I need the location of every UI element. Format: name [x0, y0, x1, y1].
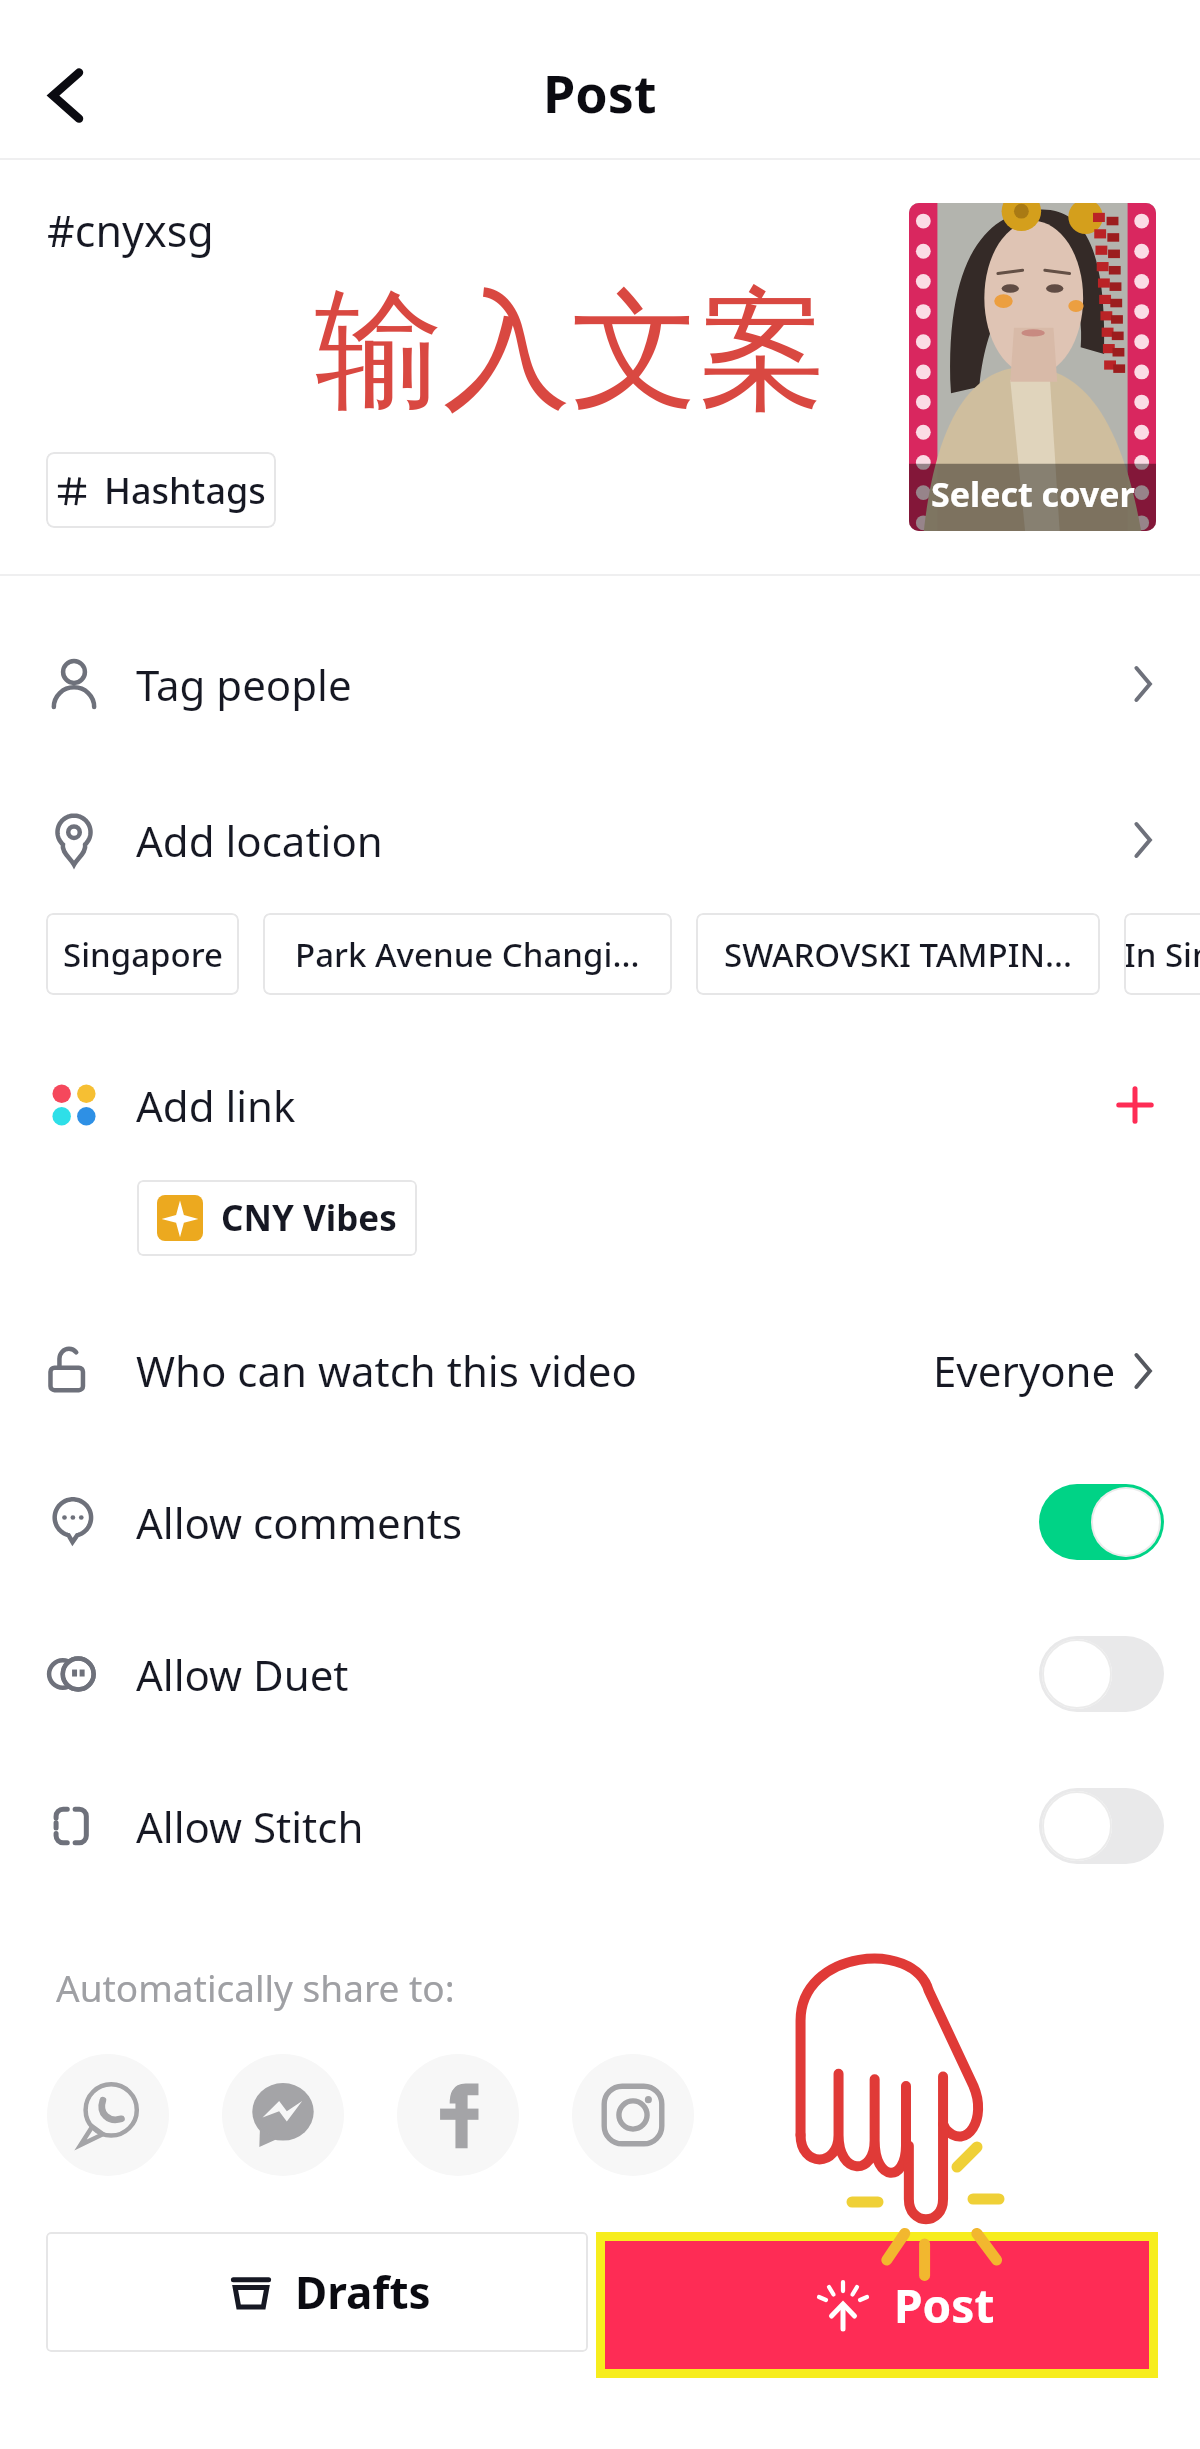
button[interactable]: Allow Stitch	[0, 1771, 1200, 1881]
staticText: Allow comments	[136, 1494, 463, 1551]
button[interactable]: Allow comments	[0, 1467, 1200, 1577]
button[interactable]: SWAROVSKI TAMPIN...	[696, 913, 1100, 995]
staticText: #cnyxsg	[47, 201, 214, 260]
staticText: Tag people	[136, 656, 352, 713]
button[interactable]: Back	[27, 55, 105, 133]
staticText: Park Avenue Changi...	[295, 932, 640, 977]
staticText: Select cover	[931, 471, 1135, 517]
button[interactable]: Post	[605, 2241, 1149, 2369]
staticText: Hashtags	[104, 466, 266, 515]
button[interactable]: Instagram	[572, 2054, 694, 2176]
button[interactable]: WhatsApp	[47, 2054, 169, 2176]
button[interactable]: Who can watch this video	[0, 1315, 1200, 1425]
button[interactable]: Park Avenue Changi...	[263, 913, 672, 995]
button[interactable]: Tag people	[0, 629, 1200, 739]
button[interactable]: Add location	[0, 785, 1200, 895]
button[interactable]: In Singapore	[1124, 913, 1200, 995]
staticText: Add link	[136, 1077, 296, 1134]
staticText: Allow Stitch	[136, 1798, 364, 1855]
staticText: CNY Vibes	[221, 1194, 397, 1242]
button[interactable]: Toggle	[1039, 1788, 1164, 1864]
button[interactable]: Select cover	[909, 203, 1156, 531]
button[interactable]: CNY Vibes	[137, 1180, 417, 1256]
button[interactable]: Singapore	[46, 913, 239, 995]
staticText: Singapore	[63, 932, 223, 977]
staticText: Post	[894, 2274, 995, 2337]
button[interactable]: Allow Duet	[0, 1619, 1200, 1729]
staticText: Who can watch this video	[136, 1342, 637, 1399]
button[interactable]: Drafts	[46, 2232, 588, 2352]
staticText: SWAROVSKI TAMPIN...	[724, 932, 1072, 977]
button[interactable]: Add link	[0, 1050, 1200, 1160]
button[interactable]: Hashtags	[46, 452, 276, 528]
button[interactable]: Toggle	[1039, 1636, 1164, 1712]
staticText: Automatically share to:	[56, 1962, 455, 2012]
staticText: In Singapore	[1124, 932, 1200, 977]
staticText: Allow Duet	[136, 1646, 349, 1703]
button[interactable]: Messenger	[222, 2054, 344, 2176]
staticText: Post	[543, 57, 657, 128]
staticText: Add location	[136, 812, 383, 869]
button[interactable]: Facebook	[397, 2054, 519, 2176]
staticText: Everyone	[933, 1342, 1116, 1399]
staticText: 输入文案	[315, 271, 827, 432]
staticText: Drafts	[295, 2262, 431, 2322]
button[interactable]: Add link	[1106, 1076, 1164, 1134]
button[interactable]: Toggle	[1039, 1484, 1164, 1560]
